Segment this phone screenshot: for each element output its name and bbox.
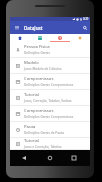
staticText: Juros, Correção, Tabelas, Verbas bbox=[24, 99, 72, 103]
button[interactable]: Compromissos bbox=[10, 106, 90, 122]
button[interactable]: Home bbox=[40, 150, 60, 166]
staticText: 4:20 bbox=[83, 17, 89, 21]
button[interactable]: Pessoa Física bbox=[10, 42, 90, 58]
staticText: DataJust bbox=[24, 25, 43, 31]
staticText: Compromissos bbox=[24, 76, 54, 82]
staticText: Modelo bbox=[24, 60, 39, 66]
button[interactable]: Open navigation menu bbox=[11, 21, 22, 34]
staticText: Definições Gerais Compromissos bbox=[24, 115, 74, 119]
button[interactable]: Favourites bbox=[70, 34, 90, 42]
button[interactable]: Calendar bbox=[30, 34, 50, 42]
staticText: Definições Gerais Compromissos bbox=[24, 83, 74, 87]
button[interactable]: Pauta bbox=[10, 122, 90, 138]
button[interactable]: Modelo bbox=[10, 58, 90, 74]
button[interactable]: Recent bbox=[50, 34, 70, 42]
button[interactable]: Recent apps bbox=[64, 150, 84, 166]
staticText: Juros e Correção, Tabelas bbox=[24, 145, 62, 149]
button[interactable]: Home bbox=[10, 34, 30, 42]
staticText: Definições Gerais de Pauta bbox=[24, 131, 64, 135]
staticText: Tutorial bbox=[24, 138, 39, 144]
button[interactable]: Tutorial bbox=[10, 90, 90, 106]
button[interactable]: Compromissos bbox=[10, 74, 90, 90]
button[interactable]: Tutorial bbox=[10, 138, 90, 150]
button[interactable]: Search bbox=[79, 21, 90, 34]
staticText: Juros Modelo de Cálculos bbox=[24, 67, 62, 71]
staticText: Compromissos bbox=[24, 108, 54, 114]
button[interactable]: Back bbox=[14, 150, 34, 166]
staticText: Pessoa Física bbox=[24, 44, 50, 50]
staticText: Definições Gerais bbox=[24, 51, 50, 55]
staticText: Pauta bbox=[24, 124, 36, 130]
staticText: Tutorial bbox=[24, 92, 39, 98]
